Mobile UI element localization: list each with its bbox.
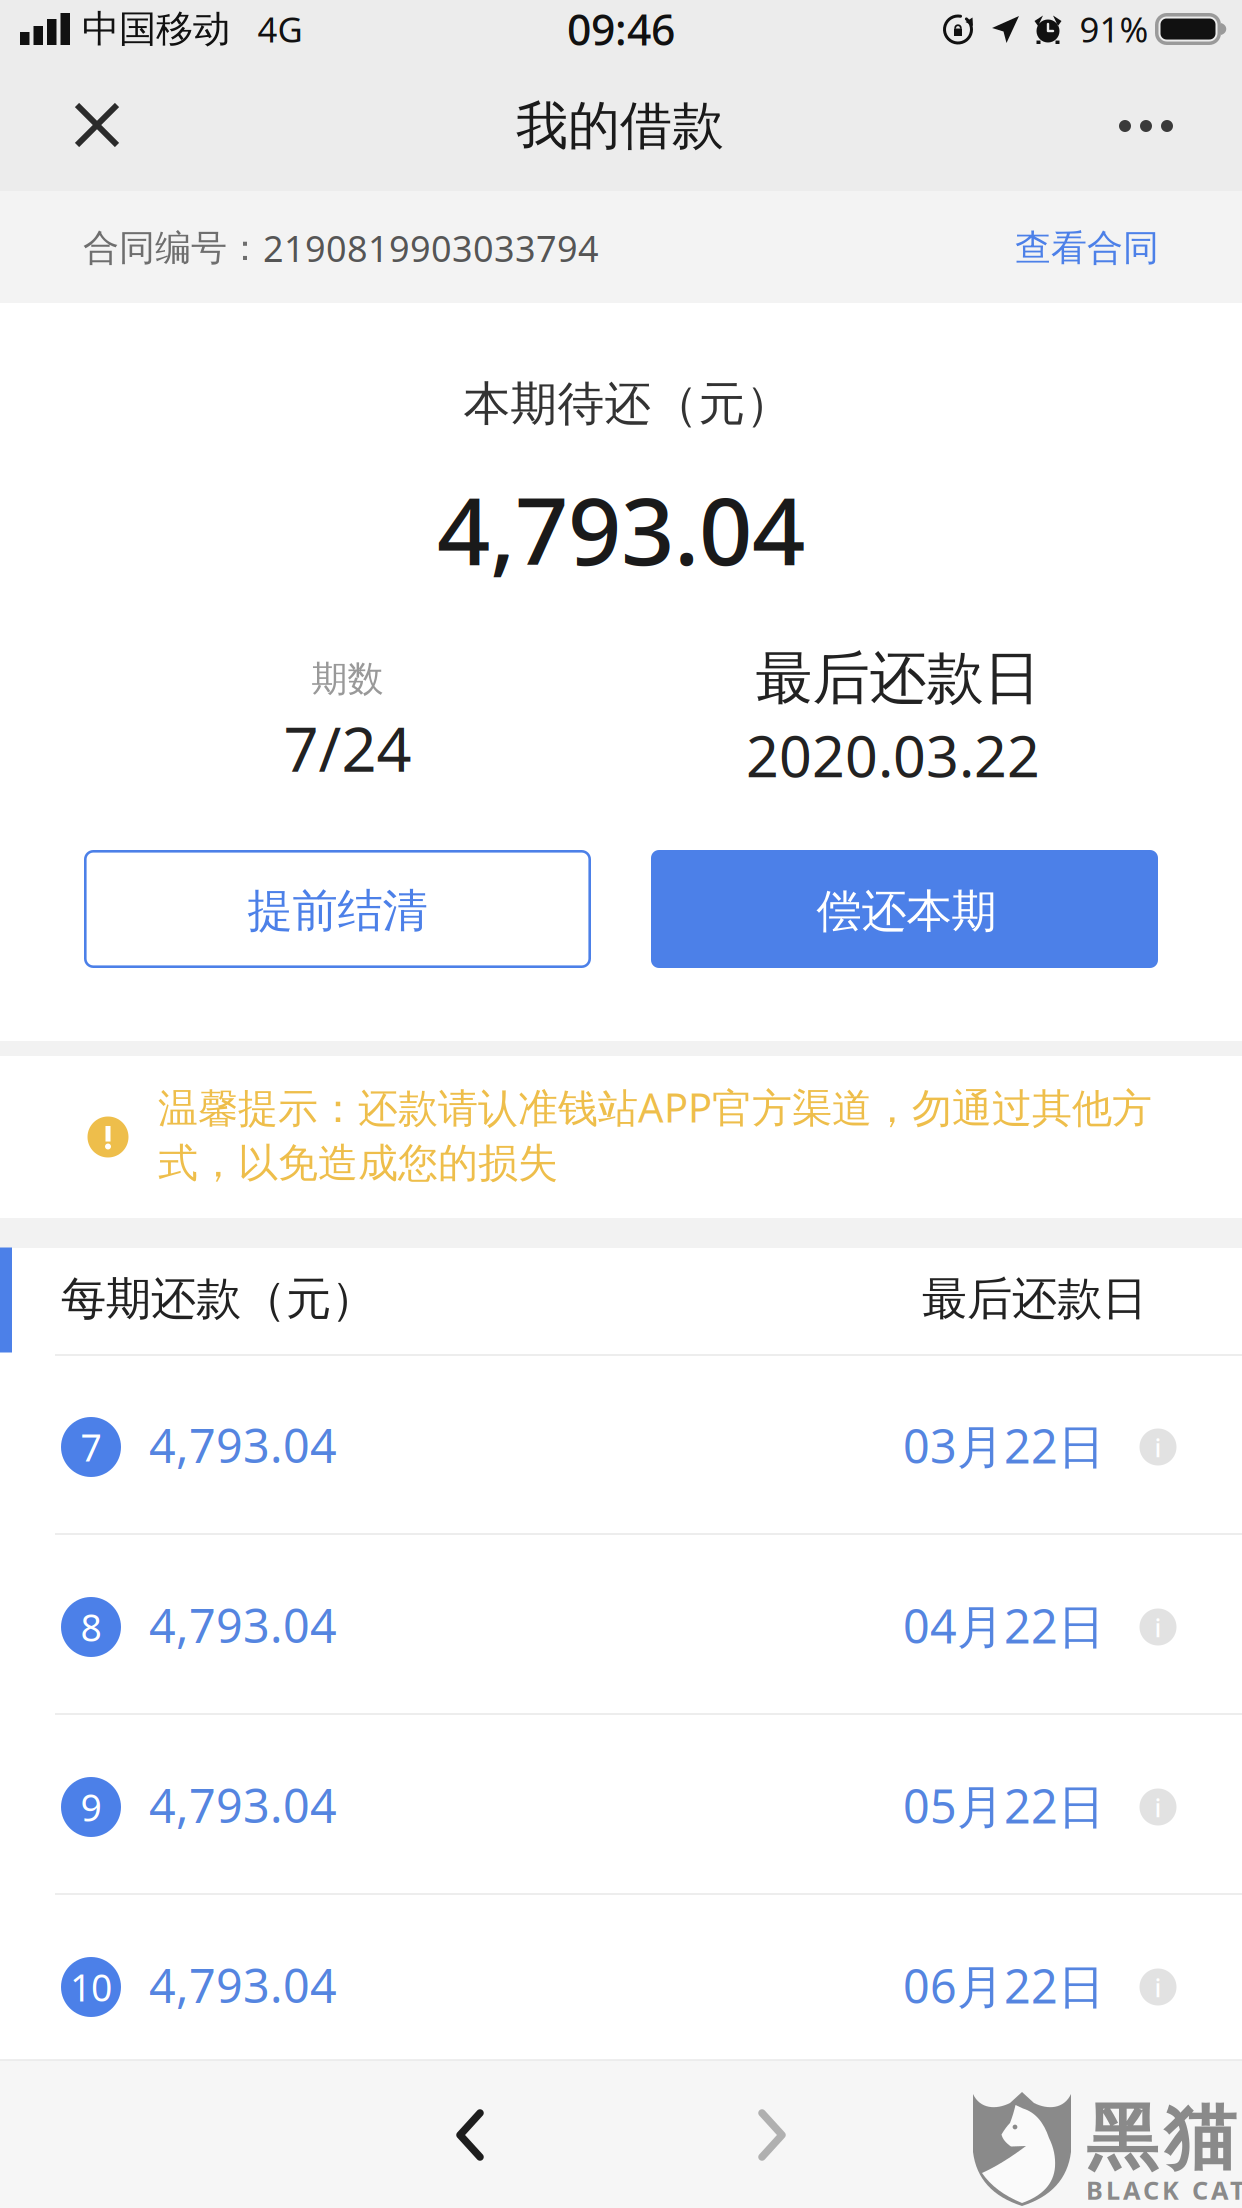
staticText: 最后还款日 (922, 1271, 1147, 1327)
staticText: 偿还本期 (816, 884, 996, 939)
staticText: 05月22日 (903, 1774, 1105, 1836)
staticText: i (1154, 1431, 1161, 1464)
staticText: 合同编号： (83, 226, 263, 270)
staticText: 04月22日 (903, 1594, 1105, 1656)
staticText: 期数 (311, 657, 383, 701)
staticText: i (1154, 1971, 1161, 2004)
staticText: 10 (70, 1962, 112, 2012)
button[interactable]: Instalment details (1118, 1587, 1198, 1667)
staticText: i (1154, 1611, 1161, 1644)
button[interactable]: Next (717, 2080, 827, 2190)
staticText: 最后还款日 (755, 643, 1040, 714)
staticText: 7/24 (283, 707, 411, 789)
button[interactable]: Instalment details (1118, 1407, 1198, 1487)
staticText: 4,793.04 (149, 1774, 337, 1836)
staticText: i (1154, 1791, 1161, 1824)
staticText: 4G (257, 6, 302, 52)
button[interactable]: 查看合同 (899, 208, 1159, 288)
staticText: 本期待还（元） (463, 375, 792, 433)
staticText: 每期还款（元） (61, 1271, 376, 1327)
staticText: 7 (80, 1422, 101, 1472)
button[interactable]: 提前结清 (84, 850, 591, 968)
button[interactable]: 10 (0, 1897, 1242, 2077)
button[interactable]: 8 (0, 1537, 1242, 1717)
staticText: 03月22日 (903, 1414, 1105, 1476)
staticText: 我的借款 (516, 94, 724, 158)
staticText: 4,793.04 (149, 1954, 337, 2016)
button[interactable]: More (1091, 81, 1201, 171)
button[interactable]: 7 (0, 1357, 1242, 1537)
staticText: 4,793.04 (149, 1594, 337, 1656)
button[interactable]: Instalment details (1118, 1947, 1198, 2027)
staticText: BLACK CAT (1086, 2173, 1242, 2207)
staticText: 2190819903033794 (263, 224, 599, 272)
staticText: 提前结清 (247, 883, 427, 939)
staticText: 4,793.04 (437, 467, 805, 591)
staticText: 4,793.04 (149, 1414, 337, 1476)
staticText: 2020.03.22 (746, 717, 1040, 793)
button[interactable]: 9 (0, 1717, 1242, 1897)
button[interactable]: 偿还本期 (651, 850, 1158, 968)
button[interactable]: Previous (415, 2080, 525, 2190)
staticText: 中国移动 (82, 6, 230, 52)
staticText: 查看合同 (1015, 226, 1159, 270)
staticText: 9 (80, 1782, 101, 1832)
staticText: 06月22日 (903, 1954, 1105, 2016)
staticText: 09:46 (567, 1, 675, 57)
staticText: 黑猫 (1086, 2094, 1236, 2182)
staticText: 91% (1079, 6, 1148, 52)
button[interactable]: Close (42, 70, 152, 180)
staticText: 温馨提示：还款请认准钱站APP官方渠道，勿通过其他方式，以免造成您的损失 (158, 1080, 1152, 1188)
staticText: 8 (80, 1602, 101, 1652)
button[interactable]: Instalment details (1118, 1767, 1198, 1847)
